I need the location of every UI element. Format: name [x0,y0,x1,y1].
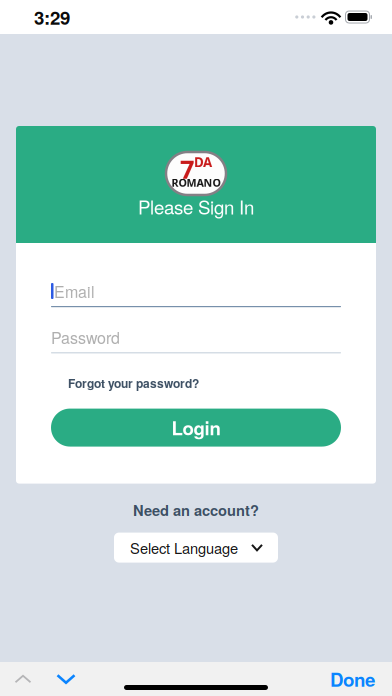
staticText: Select Language [130,537,238,558]
button[interactable]: Done [313,662,392,696]
button[interactable]: Next field [46,662,86,696]
staticText: Please Sign In [138,193,254,220]
button[interactable]: Login [51,409,341,447]
staticText: Done [330,666,375,692]
staticText: Email [54,279,95,302]
staticText: ROMANO [171,175,220,190]
staticText: Forgot your password? [68,374,199,392]
staticText: 3:29 [34,4,70,30]
button[interactable]: Previous field [0,662,46,696]
button[interactable]: Forgot your password? [68,371,199,395]
staticText: 7 [180,152,194,186]
staticText: Login [171,414,220,441]
staticText: DA [194,153,212,171]
button[interactable]: Select Language [114,533,278,563]
staticText: Need an account? [133,500,259,521]
staticText: Password [51,326,120,349]
